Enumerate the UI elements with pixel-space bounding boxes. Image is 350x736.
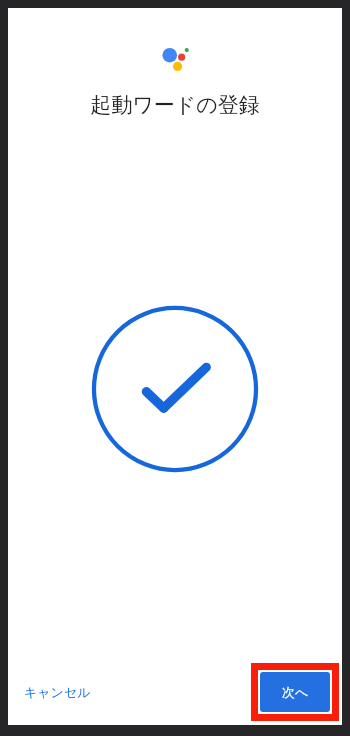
staticText: 次へ — [282, 684, 309, 700]
other: Google Assistant — [158, 44, 192, 72]
button[interactable]: 次へ — [260, 672, 330, 712]
staticText: キャンセル — [24, 684, 91, 700]
button[interactable]: キャンセル — [8, 676, 103, 708]
staticText: 起動ワードの登録 — [90, 92, 260, 118]
